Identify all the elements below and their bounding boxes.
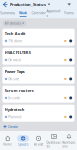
- button[interactable]: Power Taps: [2, 67, 75, 84]
- button[interactable]: Tech Audit: [2, 29, 75, 46]
- staticText: Tech Audit: [5, 31, 26, 36]
- button[interactable]: Summary: [0, 9, 15, 18]
- staticText: Planned: [8, 115, 21, 119]
- staticText: Hydrotech: [5, 107, 25, 112]
- button[interactable]: Scrum routers: [2, 86, 75, 103]
- staticText: Production_Status: [10, 2, 46, 7]
- staticText: Notifications: [62, 141, 76, 148]
- button[interactable]: AI asst: [31, 133, 46, 148]
- staticText: Forms: [64, 11, 74, 15]
- button[interactable]: Calendar: [31, 9, 46, 18]
- button[interactable]: Notifications: [62, 131, 77, 150]
- staticText: Summary: [0, 11, 15, 15]
- button[interactable]: Spaces: [15, 133, 31, 148]
- button[interactable]: All statuses: [3, 20, 26, 26]
- button[interactable]: Dashboards: [46, 131, 62, 150]
- staticText: On site: [8, 77, 19, 81]
- staticText: On track: [8, 58, 21, 62]
- staticText: In code: [8, 96, 20, 100]
- staticText: HVAC FILTERS: [5, 50, 31, 55]
- staticText: 7% done: [8, 39, 22, 43]
- button[interactable]: Back: [0, 0, 10, 9]
- button[interactable]: Forms: [62, 9, 77, 18]
- staticText: Scrum routers: [5, 88, 34, 93]
- button[interactable]: Filter: [67, 0, 77, 9]
- staticText: Dashboards: [46, 141, 61, 148]
- button[interactable]: Hydrotech: [2, 105, 75, 122]
- staticText: Power Taps: [5, 69, 25, 74]
- staticText: Work: [19, 11, 27, 15]
- button[interactable]: Approvals: [46, 9, 62, 18]
- staticText: AI asst: [34, 143, 43, 146]
- staticText: Approvals: [46, 9, 61, 18]
- button[interactable]: Production_Status: [10, 0, 50, 9]
- button[interactable]: Work: [15, 9, 31, 18]
- button[interactable]: Home: [0, 133, 15, 148]
- staticText: Calendar: [31, 11, 45, 15]
- staticText: Spaces: [18, 143, 28, 146]
- button[interactable]: Create: [0, 122, 18, 132]
- staticText: All statuses: [5, 21, 21, 25]
- staticText: Create: [8, 124, 18, 129]
- button[interactable]: HVAC FILTERS: [2, 48, 75, 65]
- staticText: Home: [3, 143, 12, 146]
